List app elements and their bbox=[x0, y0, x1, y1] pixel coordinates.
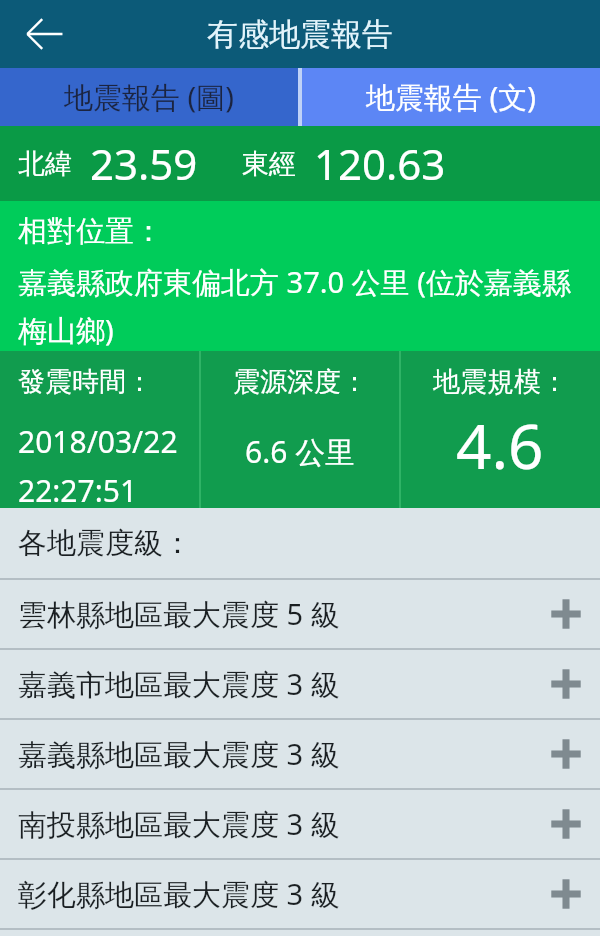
staticText: 發震時間： bbox=[18, 365, 153, 399]
staticText: 2018/03/22 bbox=[18, 421, 178, 462]
staticText: 嘉義縣政府東偏北方 37.0 公里 (位於嘉義縣 bbox=[18, 262, 571, 302]
staticText: 120.63 bbox=[314, 135, 446, 192]
staticText: 彰化縣地區最大震度 3 級 bbox=[18, 874, 340, 914]
staticText: 雲林縣地區最大震度 5 級 bbox=[18, 594, 340, 634]
staticText: 梅山鄉) bbox=[18, 310, 114, 350]
staticText: 4.6 bbox=[456, 403, 544, 487]
staticText: 22:27:51 bbox=[18, 470, 138, 508]
staticText: 各地震度級： bbox=[18, 525, 192, 562]
button[interactable]: 地震報告 (文) bbox=[302, 68, 600, 126]
button[interactable]: 嘉義縣地區最大震度 3 級 bbox=[0, 720, 600, 788]
staticText: 地震規模： bbox=[433, 365, 568, 399]
staticText: 北緯 bbox=[18, 147, 72, 181]
button[interactable]: 地震報告 (圖) bbox=[0, 68, 298, 126]
button[interactable]: 嘉義市地區最大震度 3 級 bbox=[0, 650, 600, 718]
staticText: 東經 bbox=[242, 147, 296, 181]
staticText: 有感地震報告 bbox=[207, 15, 393, 54]
button[interactable]: 南投縣地區最大震度 3 級 bbox=[0, 790, 600, 858]
staticText: 嘉義縣地區最大震度 3 級 bbox=[18, 734, 340, 774]
staticText: 震源深度： bbox=[233, 365, 368, 399]
button[interactable]: Back bbox=[10, 0, 78, 68]
button[interactable]: 彰化縣地區最大震度 3 級 bbox=[0, 860, 600, 928]
staticText: 嘉義市地區最大震度 3 級 bbox=[18, 664, 340, 704]
staticText: 南投縣地區最大震度 3 級 bbox=[18, 804, 340, 844]
staticText: 6.6 公里 bbox=[245, 431, 356, 472]
staticText: 地震報告 (圖) bbox=[64, 77, 234, 117]
staticText: 相對位置： bbox=[18, 213, 163, 250]
button[interactable]: 雲林縣地區最大震度 5 級 bbox=[0, 580, 600, 648]
staticText: 23.59 bbox=[90, 135, 198, 192]
staticText: 地震報告 (文) bbox=[366, 77, 536, 117]
